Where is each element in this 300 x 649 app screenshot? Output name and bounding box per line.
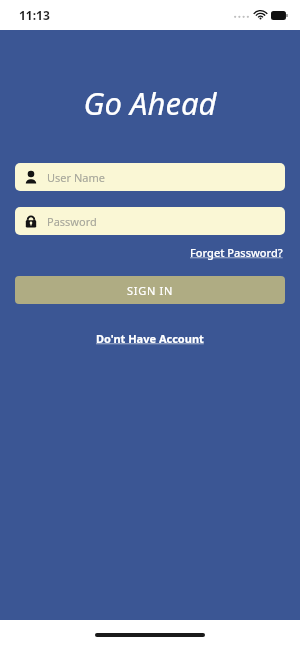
button[interactable]: SIGN IN — [15, 276, 285, 304]
staticText: Forget Password? — [190, 245, 283, 260]
staticText: SIGN IN — [127, 283, 173, 298]
staticText: Password — [47, 214, 97, 229]
button[interactable]: Password — [15, 207, 285, 235]
staticText: Do'nt Have Account — [96, 331, 204, 346]
button[interactable]: User Name — [15, 163, 285, 191]
button[interactable]: Do'nt Have Account — [92, 328, 208, 349]
staticText: User Name — [47, 170, 105, 185]
button[interactable]: Forget Password? — [188, 243, 285, 262]
staticText: 11:13 — [19, 7, 50, 23]
staticText: Go Ahead — [0, 82, 300, 124]
